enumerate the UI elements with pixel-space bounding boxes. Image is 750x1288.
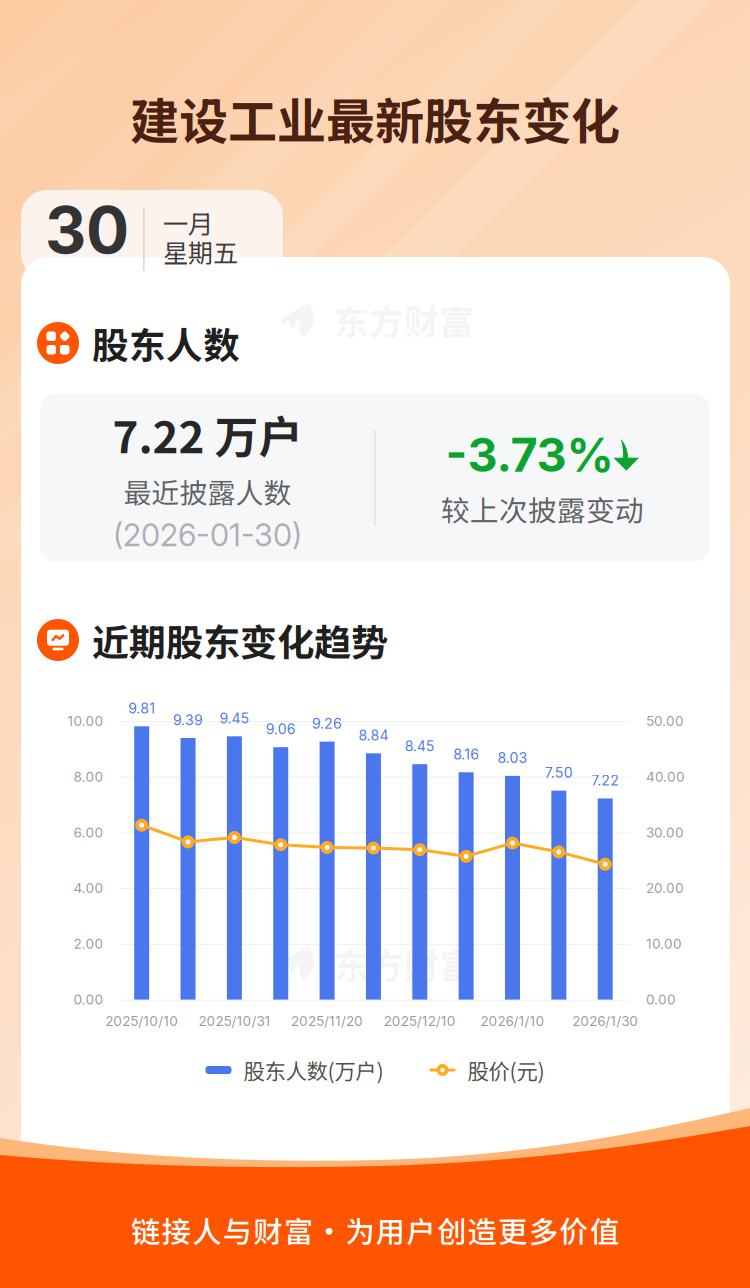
staticText: 2025/10/10 — [105, 1013, 178, 1029]
staticText: 40.00 — [646, 768, 685, 785]
staticText: -3.73% — [445, 426, 613, 483]
staticText: 7.50 — [545, 764, 573, 781]
staticText: 9.26 — [312, 715, 342, 732]
staticText: 东方财富 — [334, 295, 474, 345]
staticText: (2026-01-30) — [113, 517, 302, 554]
staticText: 30 — [45, 191, 129, 269]
staticText: 9.06 — [266, 721, 296, 738]
staticText: 8.16 — [453, 746, 479, 763]
staticText: 8.84 — [358, 727, 388, 744]
staticText: 8.00 — [73, 768, 103, 785]
staticText: 一月 — [163, 204, 213, 241]
staticText: 30.00 — [646, 824, 684, 841]
staticText: 20.00 — [646, 880, 684, 896]
staticText: 9.81 — [128, 700, 155, 717]
staticText: 股东人数 — [92, 316, 240, 370]
staticText: 8.45 — [405, 738, 435, 755]
staticText: 链接人与财富·为用户创造更多价值 — [131, 1209, 619, 1251]
staticText: 50.00 — [646, 713, 684, 729]
staticText: 2025/12/10 — [384, 1013, 456, 1029]
staticText: 6.00 — [73, 824, 103, 841]
staticText: 近期股东变化趋势 — [92, 613, 388, 667]
staticText: 东方财富 — [334, 939, 474, 989]
staticText: 10.00 — [646, 936, 682, 952]
staticText: 2025/11/20 — [291, 1013, 363, 1029]
staticText: 0.00 — [646, 991, 676, 1008]
staticText: 股东人数(万户) — [243, 1055, 383, 1085]
staticText: 星期五 — [163, 233, 238, 270]
staticText: 7.22 — [591, 772, 619, 789]
staticText: 建设工业最新股东变化 — [130, 82, 620, 153]
staticText: 2026/1/10 — [480, 1013, 544, 1029]
staticText: 7.22 万户 — [112, 402, 302, 466]
staticText: 最近披露人数 — [123, 471, 291, 511]
staticText: 9.39 — [173, 711, 203, 728]
staticText: 4.00 — [73, 880, 103, 896]
staticText: 0.00 — [73, 991, 103, 1008]
staticText: 9.45 — [219, 710, 249, 727]
staticText: 2025/10/31 — [198, 1013, 270, 1029]
staticText: 股价(元) — [467, 1055, 544, 1085]
staticText: 2026/1/30 — [572, 1013, 638, 1029]
staticText: 8.03 — [497, 749, 527, 766]
staticText: 2.00 — [73, 936, 103, 952]
staticText: 较上次披露变动 — [441, 488, 644, 529]
staticText: 10.00 — [67, 713, 103, 729]
